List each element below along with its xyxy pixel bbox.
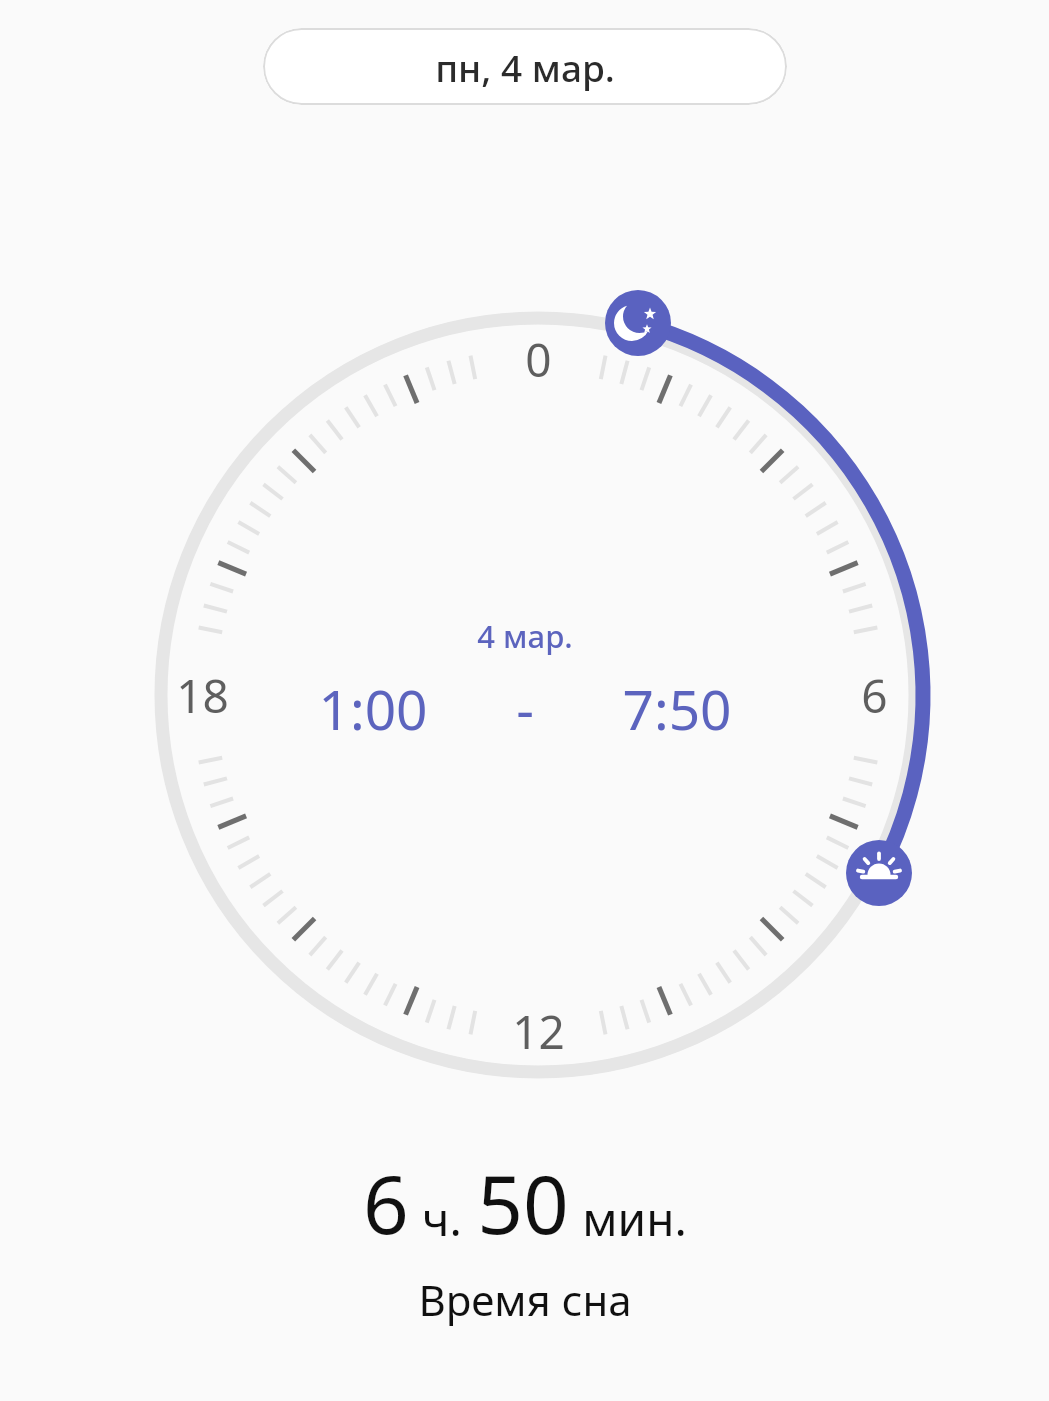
- staticText: 4 мар.: [477, 615, 573, 657]
- staticText: 7:50: [622, 671, 732, 746]
- button[interactable]: Время пробуждения: [846, 840, 912, 906]
- staticText: ч.: [422, 1187, 462, 1250]
- staticText: 1:00: [318, 671, 428, 746]
- button[interactable]: Время отхода ко сну: [605, 290, 671, 356]
- staticText: мин.: [582, 1187, 687, 1250]
- staticText: 6: [861, 664, 888, 727]
- staticText: -: [516, 671, 534, 746]
- staticText: 0: [525, 328, 552, 391]
- staticText: 18: [176, 664, 229, 727]
- staticText: 50: [477, 1148, 569, 1257]
- staticText: 12: [512, 1000, 565, 1063]
- staticText: 6: [363, 1148, 409, 1257]
- staticText: пн, 4 мар.: [435, 42, 615, 92]
- button[interactable]: пн, 4 мар.: [263, 28, 787, 105]
- staticText: Время сна: [418, 1271, 632, 1328]
